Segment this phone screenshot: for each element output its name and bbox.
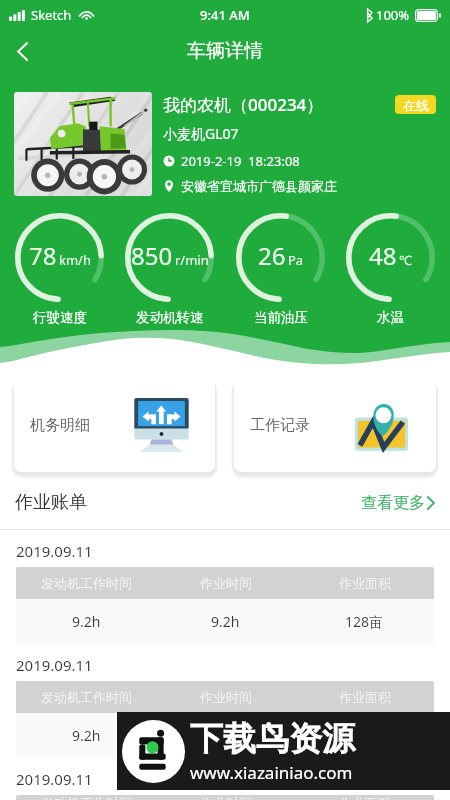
staticText: 下载鸟资源 (190, 718, 355, 760)
staticText: 100% (376, 6, 410, 24)
staticText: 在线 (403, 97, 429, 113)
button[interactable]: 机务明细 (14, 378, 215, 472)
staticText: 9.2h (72, 726, 101, 745)
staticText: 发动机工作时间 (41, 689, 132, 705)
staticText: 作业时间 (200, 575, 252, 591)
staticText: 作业时间 (200, 689, 252, 705)
staticText: 48 (369, 239, 397, 272)
button[interactable]: 查看更多 (361, 493, 435, 513)
staticText: 查看更多 (361, 493, 425, 513)
staticText: 行驶速度 (33, 309, 87, 326)
staticText: 工作记录 (250, 416, 310, 435)
staticText: 发动机转速 (136, 309, 204, 326)
staticText: 发动机工作时间 (41, 795, 132, 800)
staticText: 26 (258, 239, 286, 272)
staticText: 2019.09.11 (16, 655, 93, 675)
staticText: r/min (175, 251, 209, 269)
staticText: 车辆详情 (187, 39, 263, 63)
staticText: 作业面积 (339, 689, 391, 705)
button[interactable]: 返回 (0, 30, 44, 72)
staticText: 2019-2-19 18:23:08 (181, 152, 300, 170)
staticText: 9:41 AM (200, 6, 250, 24)
staticText: 128亩 (345, 612, 384, 631)
button[interactable]: 在线 (395, 95, 436, 114)
staticText: 128亩 (345, 726, 384, 745)
staticText: 机务明细 (30, 416, 90, 435)
staticText: 作业面积 (339, 795, 391, 800)
staticText: 9.2h (211, 726, 240, 745)
staticText: 2019.09.11 (16, 541, 93, 561)
staticText: 小麦机GL07 (163, 124, 239, 143)
staticText: 作业面积 (339, 575, 391, 591)
staticText: 发动机工作时间 (41, 575, 132, 591)
staticText: 水温 (377, 309, 404, 326)
staticText: Pa (288, 251, 304, 269)
staticText: 850 (131, 239, 173, 272)
staticText: 2019.09.11 (16, 769, 93, 789)
staticText: ℃ (399, 251, 412, 269)
staticText: 当前油压 (254, 309, 308, 326)
button[interactable]: 工作记录 (234, 378, 436, 472)
staticText: 作业账单 (15, 491, 87, 514)
staticText: 9.2h (211, 612, 240, 631)
staticText: www.xiazainiao.com (190, 761, 353, 784)
staticText: 78 (29, 239, 57, 272)
staticText: Sketch (31, 6, 72, 24)
staticText: 安徽省宜城市广德县颜家庄 (181, 178, 337, 194)
staticText: 9.2h (72, 612, 101, 631)
staticText: 作业时间 (200, 795, 252, 800)
staticText: 我的农机（000234） (163, 93, 395, 116)
staticText: km/h (59, 251, 91, 269)
